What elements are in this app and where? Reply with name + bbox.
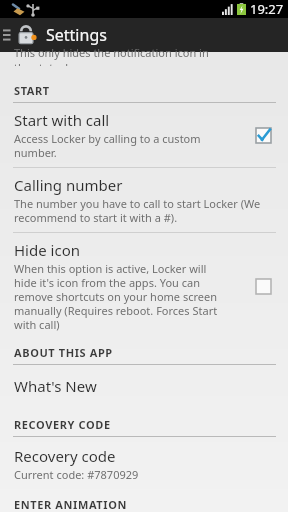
button[interactable]: Start with call xyxy=(0,103,288,168)
staticText: Hide icon xyxy=(14,240,80,260)
staticText: Calling number xyxy=(14,175,123,195)
button[interactable]: What's New xyxy=(0,369,288,403)
staticText: the statusbar xyxy=(14,60,83,66)
button[interactable]: Calling number xyxy=(0,168,288,233)
button[interactable]: Open navigation drawer xyxy=(0,18,288,52)
staticText: Access Locker by calling to a custom num… xyxy=(14,131,201,160)
staticText: Settings xyxy=(46,24,107,46)
staticText: 19:27 xyxy=(250,0,284,18)
staticText: Recovery code xyxy=(14,446,116,466)
staticText: When this option is active, Locker will … xyxy=(14,261,218,332)
staticText: ENTER ANIMATION xyxy=(14,497,128,512)
staticText: Start with call xyxy=(14,110,110,130)
staticText: The number you have to call to start Loc… xyxy=(14,196,261,225)
staticText: RECOVERY CODE xyxy=(14,417,111,432)
staticText: START xyxy=(14,83,50,98)
staticText: This only hides the notification icon in xyxy=(14,45,209,60)
staticText: ABOUT THIS APP xyxy=(14,345,113,360)
button[interactable]: Hide icon xyxy=(0,233,288,339)
other: Open navigation drawer xyxy=(3,26,13,44)
button[interactable]: Recovery code xyxy=(0,439,288,489)
staticText: Current code: #7870929 xyxy=(14,467,139,482)
staticText: What's New xyxy=(14,376,97,396)
